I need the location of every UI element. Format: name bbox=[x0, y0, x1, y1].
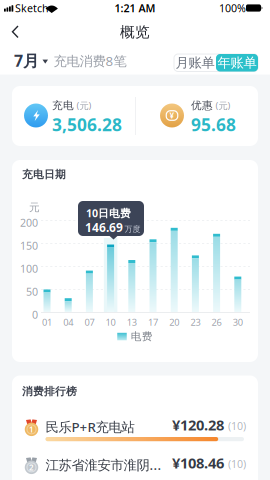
staticText: ¥108.46 bbox=[172, 453, 224, 472]
staticText: 电费 bbox=[131, 330, 153, 343]
staticText: ¥ bbox=[169, 110, 174, 121]
staticText: 95.68 bbox=[191, 113, 236, 136]
staticText: (元) bbox=[76, 99, 91, 112]
staticText: 江苏省淮安市淮阴... bbox=[45, 456, 161, 474]
staticText: 01 bbox=[42, 316, 52, 328]
staticText: 150 bbox=[20, 238, 38, 253]
staticText: 100 bbox=[20, 261, 38, 276]
staticText: Sketch bbox=[15, 1, 49, 15]
staticText: 年账单 bbox=[217, 55, 256, 71]
staticText: 146.69 bbox=[85, 219, 123, 235]
staticText: 10 bbox=[106, 316, 116, 328]
staticText: 50 bbox=[26, 284, 38, 299]
staticText: 30 bbox=[233, 316, 243, 328]
staticText: 民乐P+R充电站 bbox=[45, 418, 134, 436]
staticText: (10) bbox=[228, 419, 246, 433]
staticText: 概览 bbox=[120, 23, 150, 41]
staticText: 充电 bbox=[52, 99, 74, 112]
staticText: 26 bbox=[212, 316, 222, 328]
button[interactable]: 年账单 bbox=[216, 54, 258, 71]
button[interactable]: 月账单 bbox=[174, 54, 216, 71]
staticText: 月账单 bbox=[175, 55, 214, 71]
staticText: 07 bbox=[84, 316, 94, 328]
staticText: 充电日期 bbox=[22, 168, 66, 181]
staticText: 消费排行榜 bbox=[22, 385, 77, 398]
staticText: 04 bbox=[63, 316, 73, 328]
staticText: 2 bbox=[29, 462, 34, 473]
staticText: 0 bbox=[32, 307, 38, 322]
staticText: 元 bbox=[29, 201, 40, 214]
button[interactable]: 7月 bbox=[14, 50, 48, 71]
button[interactable]: Back bbox=[4, 20, 27, 43]
staticText: 3,506.28 bbox=[52, 113, 122, 136]
staticText: ¥120.28 bbox=[172, 415, 224, 434]
staticText: 7月 bbox=[14, 50, 39, 71]
staticText: 10日电费 bbox=[86, 206, 131, 220]
staticText: 充电消费8笔 bbox=[53, 52, 126, 70]
staticText: (元) bbox=[215, 99, 230, 112]
staticText: 100% bbox=[219, 1, 246, 15]
staticText: 优惠 bbox=[191, 99, 213, 112]
staticText: 1 bbox=[29, 424, 34, 435]
staticText: 1:21 AM bbox=[114, 1, 155, 15]
staticText: 200 bbox=[20, 215, 38, 230]
staticText: 23 bbox=[190, 316, 200, 328]
staticText: 17 bbox=[148, 316, 158, 328]
staticText: 20 bbox=[169, 316, 179, 328]
staticText: (10) bbox=[228, 457, 246, 471]
staticText: 万度 bbox=[124, 224, 140, 234]
staticText: 13 bbox=[127, 316, 137, 328]
